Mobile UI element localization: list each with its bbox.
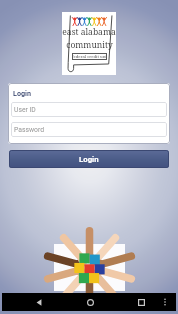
staticText: east alabama [62,26,116,38]
staticText: community [66,39,113,51]
staticText: Login [13,89,31,97]
button[interactable]: Recent apps [132,293,150,311]
staticText: Password [14,126,45,134]
staticText: federal credit union [72,54,107,60]
button[interactable]: Back [30,293,48,311]
button[interactable]: More options [158,295,172,309]
button[interactable]: User ID [11,102,167,117]
button[interactable]: Password [11,122,167,137]
staticText: Login [79,155,99,164]
button[interactable]: Home [81,293,99,311]
button[interactable]: Login [9,150,169,168]
staticText: User ID [14,106,36,114]
